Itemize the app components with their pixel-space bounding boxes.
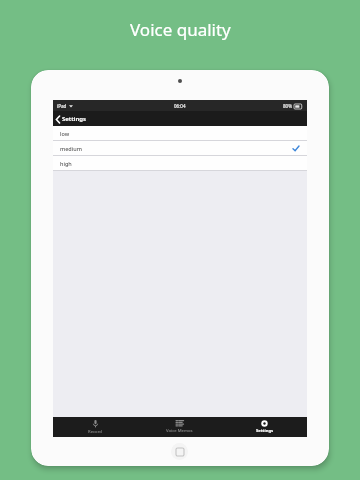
staticText: medium bbox=[60, 145, 82, 152]
staticText: Record bbox=[88, 429, 102, 435]
staticText: Voice quality bbox=[130, 18, 231, 41]
staticText: Settings bbox=[62, 115, 86, 123]
button[interactable]: medium bbox=[53, 141, 307, 155]
button[interactable]: Record bbox=[53, 417, 137, 437]
staticText: high bbox=[60, 160, 72, 167]
button[interactable]: high bbox=[53, 156, 307, 170]
staticText: 06:04 bbox=[174, 103, 186, 109]
staticText: Settings bbox=[256, 428, 274, 434]
staticText: Voice Memos bbox=[166, 428, 193, 434]
staticText: 80% bbox=[283, 103, 292, 109]
button[interactable]: Home bbox=[171, 443, 188, 460]
button[interactable]: Settings bbox=[222, 417, 307, 437]
button[interactable]: low bbox=[53, 126, 307, 140]
button[interactable]: Settings bbox=[56, 115, 86, 123]
staticText: iPad bbox=[57, 103, 67, 109]
button[interactable]: Voice Memos bbox=[137, 417, 222, 437]
staticText: low bbox=[60, 130, 70, 137]
